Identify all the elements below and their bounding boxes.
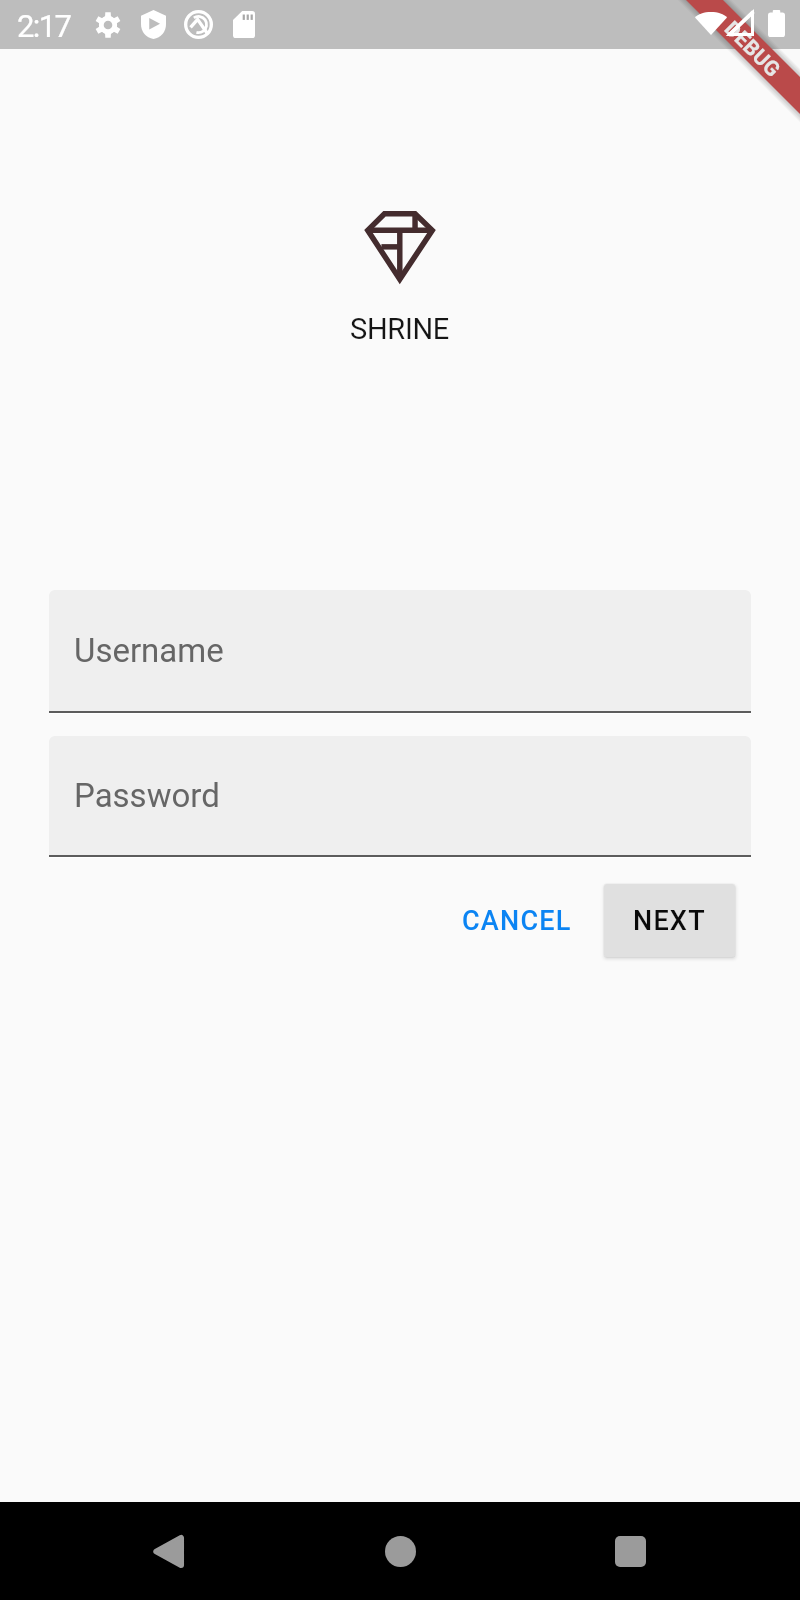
button[interactable]: NEXT bbox=[604, 884, 735, 957]
staticText: SHRINE bbox=[350, 312, 450, 346]
staticText: 2:17 bbox=[17, 8, 71, 44]
staticText: CANCEL bbox=[462, 905, 572, 937]
staticText: Username bbox=[74, 631, 224, 670]
staticText: Password bbox=[74, 776, 220, 815]
button[interactable]: Username bbox=[49, 590, 751, 714]
staticText: DEBUG bbox=[719, 17, 785, 82]
staticText: NEXT bbox=[633, 905, 706, 937]
button[interactable]: Back bbox=[100, 1502, 235, 1600]
button[interactable]: Password bbox=[49, 736, 751, 858]
button[interactable]: Recent apps bbox=[563, 1502, 698, 1600]
button[interactable]: CANCEL bbox=[444, 889, 590, 953]
button[interactable]: Home bbox=[333, 1502, 468, 1600]
